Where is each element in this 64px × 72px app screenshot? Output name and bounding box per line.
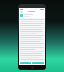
button[interactable]: Secondary action <box>32 62 44 64</box>
button[interactable]: Back <box>20 10 23 13</box>
button[interactable]: More options <box>41 10 44 13</box>
button[interactable]: Primary action <box>20 62 31 64</box>
button[interactable] <box>20 14 44 17</box>
